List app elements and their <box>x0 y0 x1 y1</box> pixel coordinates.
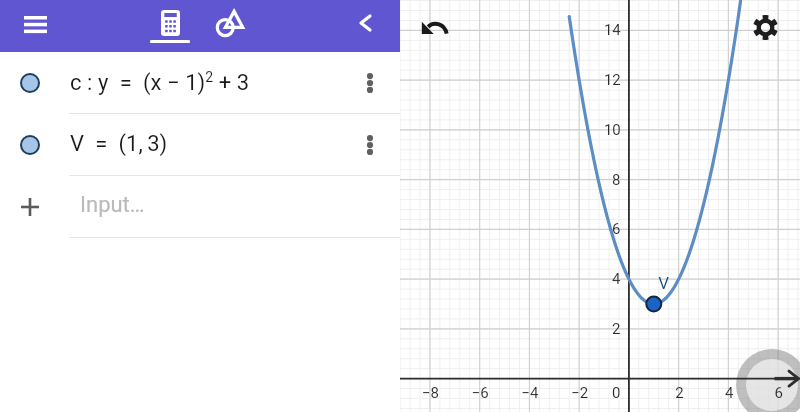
staticText: Input… <box>80 192 145 218</box>
button[interactable]: Toggle visibility <box>0 114 400 176</box>
button[interactable]: Calculator <box>150 10 190 44</box>
staticText: V = (1, 3) <box>70 131 168 157</box>
button[interactable]: Geometry <box>216 8 244 36</box>
button[interactable]: Settings <box>748 10 783 45</box>
button[interactable]: More options <box>353 128 387 162</box>
button[interactable]: Back <box>344 2 386 44</box>
button[interactable]: Add input <box>0 176 400 238</box>
staticText: c : y = (x − 1)2 + 3 <box>70 69 250 95</box>
button[interactable]: More options <box>353 66 387 100</box>
button[interactable]: Toggle visibility <box>0 52 400 114</box>
button[interactable]: Menu <box>13 2 57 46</box>
button[interactable]: Zoom controls <box>736 349 800 412</box>
button[interactable]: Add input <box>16 193 44 221</box>
button[interactable]: Toggle visibility <box>20 73 40 93</box>
button[interactable]: Undo <box>416 9 452 45</box>
button[interactable]: Toggle visibility <box>20 135 40 155</box>
